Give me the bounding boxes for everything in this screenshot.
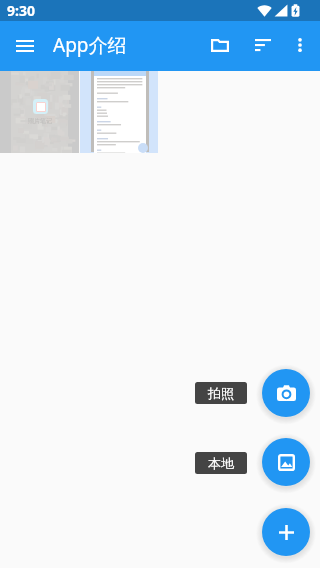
button[interactable]: Take photo [262, 369, 310, 417]
button[interactable]: Choose local image [262, 438, 310, 486]
button[interactable]: Add [262, 508, 310, 556]
button[interactable]: 本地 [195, 452, 247, 474]
button[interactable]: More options [280, 25, 320, 65]
button[interactable]: Photo note screenshot [0, 71, 79, 153]
staticText: 照片笔记 [28, 117, 52, 125]
staticText: 9:30 [7, 1, 35, 20]
button[interactable]: Menu [4, 24, 46, 66]
button[interactable]: Document screenshot [80, 71, 158, 153]
staticText: 拍照 [208, 385, 234, 401]
button[interactable]: Sort [241, 23, 285, 67]
staticText: App介绍 [53, 32, 127, 58]
staticText: 本地 [208, 455, 234, 471]
button[interactable]: 拍照 [195, 382, 247, 404]
button[interactable]: Folder [198, 23, 242, 67]
